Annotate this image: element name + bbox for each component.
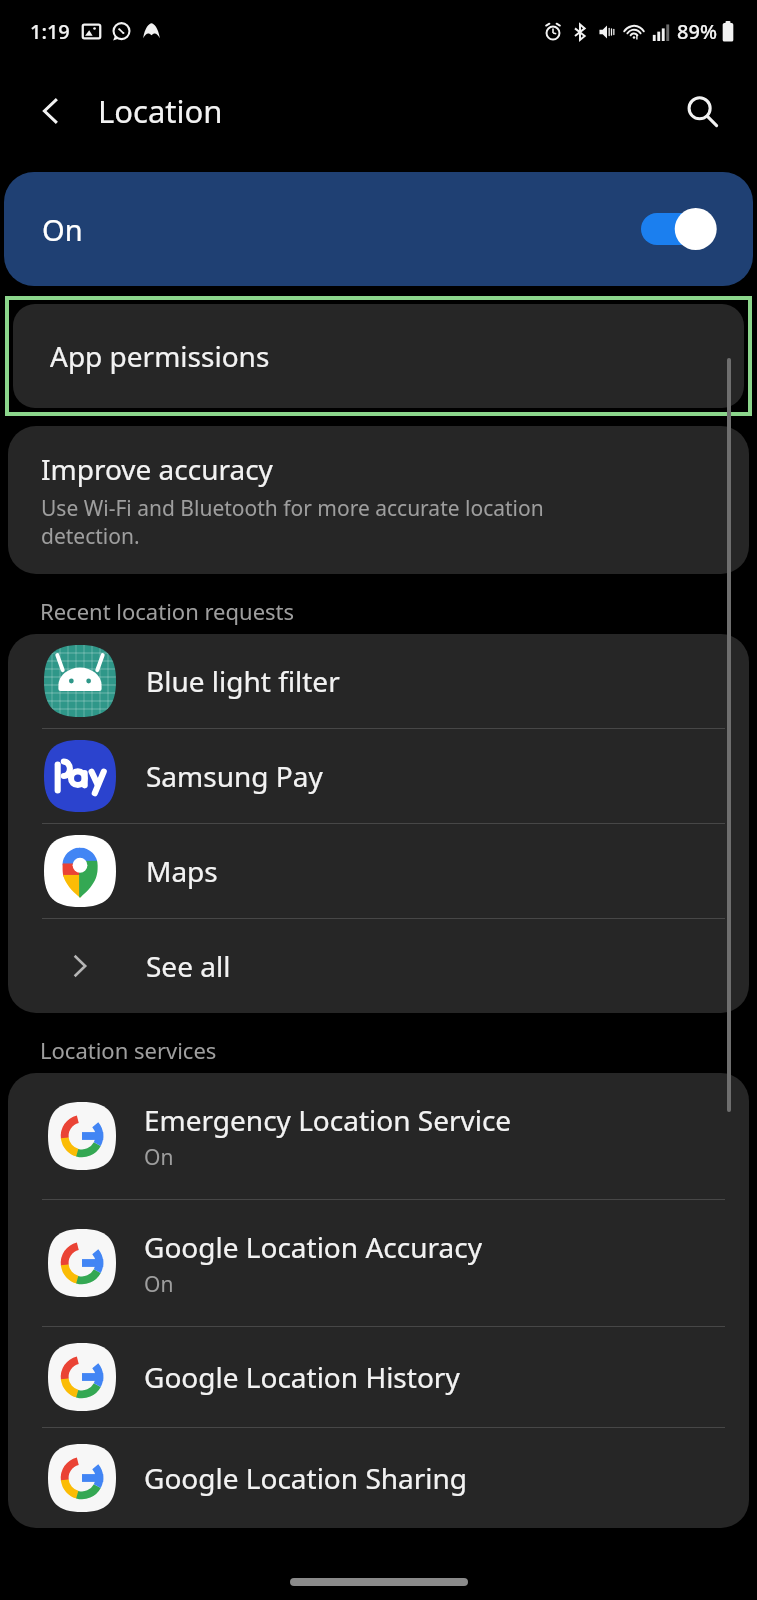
staticText: Location (98, 90, 223, 132)
button[interactable]: Google Location Sharing (8, 1428, 749, 1528)
staticText: Google Location Accuracy (144, 1228, 482, 1266)
button[interactable]: Emergency Location Service (8, 1073, 749, 1199)
button[interactable]: Back (22, 82, 80, 140)
staticText: On (144, 1143, 174, 1172)
button[interactable]: App permissions (13, 304, 744, 408)
staticText: Samsung Pay (146, 757, 323, 795)
staticText: Blue light filter (146, 662, 340, 700)
staticText: Improve accuracy (41, 450, 273, 488)
staticText: App permissions (50, 337, 270, 375)
button[interactable]: Improve accuracy (8, 426, 749, 574)
staticText: Emergency Location Service (144, 1101, 512, 1139)
staticText: On (144, 1270, 174, 1299)
staticText: Google Location History (144, 1358, 460, 1396)
staticText: On (42, 210, 83, 249)
staticText: Maps (146, 852, 218, 890)
button[interactable]: Maps (8, 824, 749, 918)
button[interactable]: Search (673, 82, 731, 140)
staticText: Use Wi-Fi and Bluetooth for more accurat… (41, 494, 609, 550)
button[interactable]: On (4, 172, 753, 286)
staticText: Google Location Sharing (144, 1459, 468, 1497)
staticText: See all (146, 947, 231, 985)
button[interactable]: Google Location Accuracy (8, 1200, 749, 1326)
staticText: Recent location requests (40, 596, 295, 626)
button[interactable]: Samsung Pay (8, 729, 749, 823)
staticText: Location services (40, 1035, 217, 1065)
button[interactable]: Google Location History (8, 1327, 749, 1427)
button[interactable]: See all (8, 919, 749, 1013)
button[interactable]: Blue light filter (8, 634, 749, 728)
staticText: 1:19 (30, 18, 70, 45)
staticText: 89% (677, 18, 717, 45)
